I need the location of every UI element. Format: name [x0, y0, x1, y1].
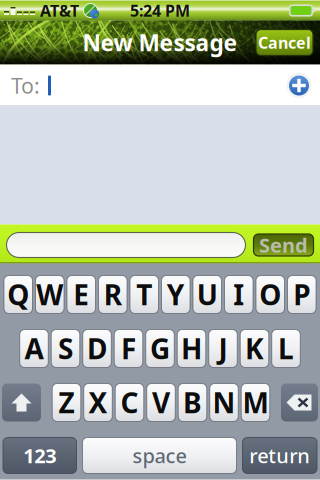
button[interactable]: I [224, 275, 253, 313]
button[interactable]: Q [4, 275, 32, 313]
staticText: To: [11, 71, 40, 100]
button[interactable]: L [272, 329, 300, 367]
button[interactable]: G [146, 329, 174, 367]
button[interactable]: E [67, 275, 95, 313]
staticText: S [58, 330, 73, 367]
button[interactable]: V [147, 383, 175, 421]
button[interactable]: Z [52, 383, 81, 421]
staticText: M [242, 384, 268, 421]
button[interactable]: S [51, 329, 80, 367]
button[interactable]: R [98, 275, 127, 313]
button[interactable]: U [193, 275, 221, 313]
staticText: Y [167, 276, 185, 313]
staticText: New Message [82, 27, 237, 57]
staticText: J [218, 330, 227, 367]
button[interactable]: Cancel [256, 29, 313, 55]
staticText: R [104, 276, 122, 313]
button[interactable]: X [84, 383, 112, 421]
staticText: Cancel [258, 32, 311, 53]
button[interactable]: Shift [2, 383, 41, 421]
staticText: 123 [23, 442, 56, 469]
button[interactable]: D [83, 329, 111, 367]
button[interactable]: Send [253, 234, 313, 256]
staticText: Q [7, 276, 29, 313]
button[interactable]: space [82, 437, 236, 473]
button[interactable]: Add contact [284, 70, 314, 100]
button[interactable]: Delete [281, 383, 318, 421]
staticText: V [152, 384, 170, 421]
button[interactable]: return [242, 437, 317, 473]
button[interactable]: W [35, 275, 64, 313]
staticText: Z [58, 384, 74, 421]
button[interactable]: C [115, 383, 144, 421]
button[interactable]: N [210, 383, 238, 421]
button[interactable]: T [130, 275, 158, 313]
button[interactable]: B [178, 383, 207, 421]
staticText: F [121, 330, 136, 367]
staticText: A [24, 330, 43, 367]
button[interactable]: A [20, 329, 48, 367]
staticText: X [88, 384, 107, 421]
staticText: N [212, 384, 235, 421]
button[interactable]: Y [161, 275, 190, 313]
button[interactable]: F [114, 329, 143, 367]
staticText: G [150, 330, 170, 367]
button[interactable]: O [256, 275, 284, 313]
staticText: O [259, 276, 281, 313]
staticText: T [136, 276, 152, 313]
button[interactable]: H [177, 329, 206, 367]
staticText: Send [259, 232, 308, 258]
staticText: B [183, 384, 202, 421]
button[interactable]: P [287, 275, 316, 313]
staticText: E [73, 276, 89, 313]
button[interactable]: K [240, 329, 269, 367]
staticText: K [245, 330, 264, 367]
staticText: U [197, 276, 218, 313]
staticText: 5:24 PM [130, 0, 190, 21]
staticText: H [181, 330, 202, 367]
staticText: D [87, 330, 107, 367]
staticText: AT&T [40, 0, 79, 21]
button[interactable]: M [241, 383, 270, 421]
staticText: C [120, 384, 138, 421]
staticText: return [249, 442, 310, 469]
staticText: W [36, 276, 63, 313]
staticText: L [278, 330, 294, 367]
staticText: P [293, 276, 310, 313]
button[interactable]: 123 [3, 437, 76, 473]
staticText: space [132, 442, 186, 469]
button[interactable]: J [209, 329, 237, 367]
staticText: I [233, 276, 244, 313]
